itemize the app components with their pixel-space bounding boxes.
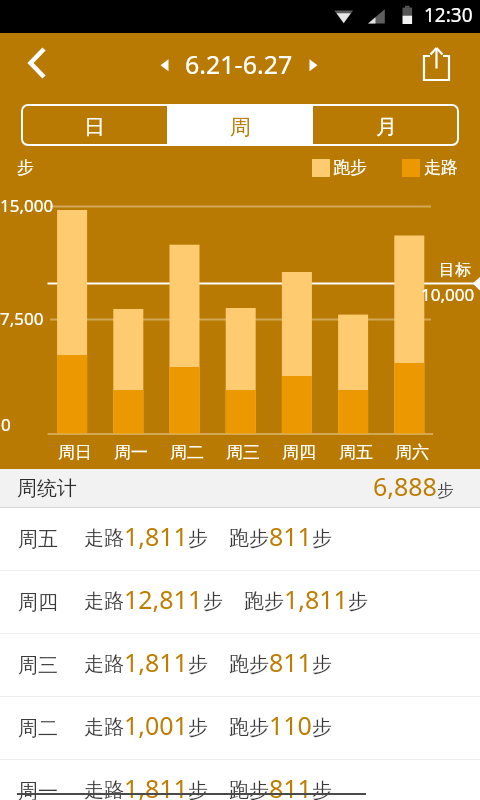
staticText: 811 xyxy=(269,519,312,553)
staticText: 周五 xyxy=(339,442,373,463)
staticText: 步 xyxy=(188,526,208,551)
staticText: 跑步 xyxy=(333,157,367,178)
staticText: 步 xyxy=(312,526,332,551)
staticText: 周 xyxy=(230,114,251,140)
staticText: 步 xyxy=(437,480,454,501)
button[interactable]: 周四 xyxy=(0,571,480,633)
staticText: 步 xyxy=(188,715,208,740)
staticText: 周三 xyxy=(18,653,58,678)
staticText: 周统计 xyxy=(17,476,77,501)
staticText: 走路 xyxy=(424,157,458,178)
staticText: 12:30 xyxy=(424,2,473,28)
button[interactable]: 日 xyxy=(21,104,167,146)
button[interactable] xyxy=(412,41,460,89)
staticText: 1,811 xyxy=(124,645,188,679)
staticText: 跑步 xyxy=(229,778,269,800)
button[interactable]: 周五 xyxy=(0,508,480,570)
staticText: 步 xyxy=(17,157,34,178)
staticText: 811 xyxy=(269,645,312,679)
staticText: 6,888 xyxy=(373,469,437,503)
staticText: 步 xyxy=(348,589,368,614)
staticText: 走路 xyxy=(84,715,124,740)
staticText: 10,000 xyxy=(421,283,475,306)
staticText: 走路 xyxy=(84,526,124,551)
staticText: 12,811 xyxy=(124,582,203,616)
staticText: 周三 xyxy=(226,442,260,463)
staticText: 周二 xyxy=(18,716,58,741)
staticText: 跑步 xyxy=(244,589,284,614)
staticText: 目标 xyxy=(439,260,471,280)
staticText: 日 xyxy=(84,114,105,140)
staticText: 月 xyxy=(376,114,397,140)
staticText: 走路 xyxy=(84,589,124,614)
staticText: 走路 xyxy=(84,778,124,800)
staticText: 步 xyxy=(203,589,223,614)
staticText: 周四 xyxy=(282,442,316,463)
staticText: 周四 xyxy=(18,590,58,615)
staticText: 6.21-6.27 xyxy=(185,47,293,81)
button[interactable] xyxy=(0,33,56,95)
staticText: 走路 xyxy=(84,652,124,677)
staticText: 110 xyxy=(269,708,312,742)
button[interactable]: 周二 xyxy=(0,697,480,759)
button[interactable]: 周三 xyxy=(0,634,480,696)
button[interactable]: 月 xyxy=(313,104,459,146)
staticText: 步 xyxy=(188,778,208,800)
button[interactable]: 6.21-6.27 xyxy=(168,33,310,95)
staticText: 跑步 xyxy=(229,715,269,740)
staticText: 0 xyxy=(1,413,11,436)
staticText: 周五 xyxy=(18,527,58,552)
staticText: 步 xyxy=(312,652,332,677)
staticText: 15,000 xyxy=(0,194,54,217)
staticText: 周六 xyxy=(395,442,429,463)
staticText: 1,811 xyxy=(124,771,188,800)
staticText: 1,811 xyxy=(284,582,348,616)
button[interactable]: 周一 xyxy=(0,760,480,800)
staticText: 跑步 xyxy=(229,652,269,677)
staticText: 步 xyxy=(312,715,332,740)
staticText: 步 xyxy=(188,652,208,677)
staticText: 811 xyxy=(269,771,312,800)
staticText: 1,811 xyxy=(124,519,188,553)
button[interactable]: 周 xyxy=(167,104,313,146)
staticText: 周一 xyxy=(18,779,58,800)
staticText: 周日 xyxy=(58,442,92,463)
staticText: 周二 xyxy=(170,442,204,463)
staticText: 步 xyxy=(312,778,332,800)
staticText: 周一 xyxy=(114,442,148,463)
staticText: 跑步 xyxy=(229,526,269,551)
staticText: 7,500 xyxy=(0,307,44,330)
staticText: 1,001 xyxy=(124,708,188,742)
